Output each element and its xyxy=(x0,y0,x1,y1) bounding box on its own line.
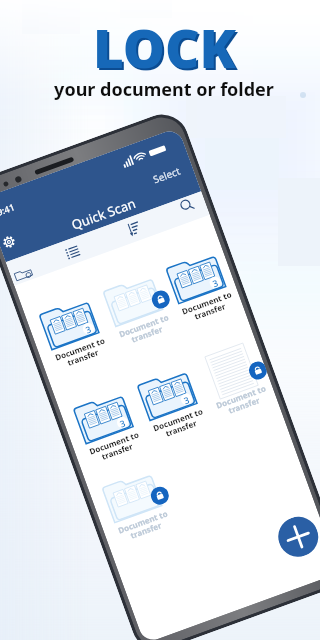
button[interactable]: Document to transfer xyxy=(198,340,272,421)
button[interactable]: Select xyxy=(147,161,186,189)
button[interactable]: 3 xyxy=(163,246,238,327)
staticText: your document or folder xyxy=(54,77,274,102)
button[interactable]: Document to transfer xyxy=(100,269,175,349)
button[interactable]: Search xyxy=(178,197,196,215)
staticText: Document to transfer xyxy=(114,507,174,546)
staticText: Document to transfer xyxy=(51,334,111,373)
button[interactable]: List view xyxy=(64,244,81,261)
staticText: Document to transfer xyxy=(213,382,272,421)
staticText: Document to transfer xyxy=(150,405,209,444)
staticText: Select xyxy=(151,164,182,186)
staticText: 3 xyxy=(118,416,128,430)
button[interactable]: Add xyxy=(273,511,320,562)
staticText: 9:41 xyxy=(0,200,16,218)
staticText: 3 xyxy=(182,393,191,406)
button[interactable]: Settings xyxy=(1,234,17,250)
staticText: Document to transfer xyxy=(178,288,238,327)
button[interactable]: Folders xyxy=(12,264,35,284)
button[interactable]: Sort xyxy=(126,220,142,237)
staticText: Document to transfer xyxy=(86,428,145,467)
staticText: LOCK xyxy=(95,13,238,85)
staticText: 3 xyxy=(84,322,93,336)
button[interactable]: 3 xyxy=(71,387,146,467)
staticText: 3 xyxy=(210,276,220,289)
staticText: Quick Scan xyxy=(69,194,138,234)
button[interactable]: 3 xyxy=(135,363,209,443)
button[interactable]: 3 xyxy=(36,293,111,373)
staticText: Document to transfer xyxy=(115,311,175,350)
button[interactable]: Document to transfer xyxy=(99,465,174,546)
staticText: LOCK xyxy=(93,11,236,83)
